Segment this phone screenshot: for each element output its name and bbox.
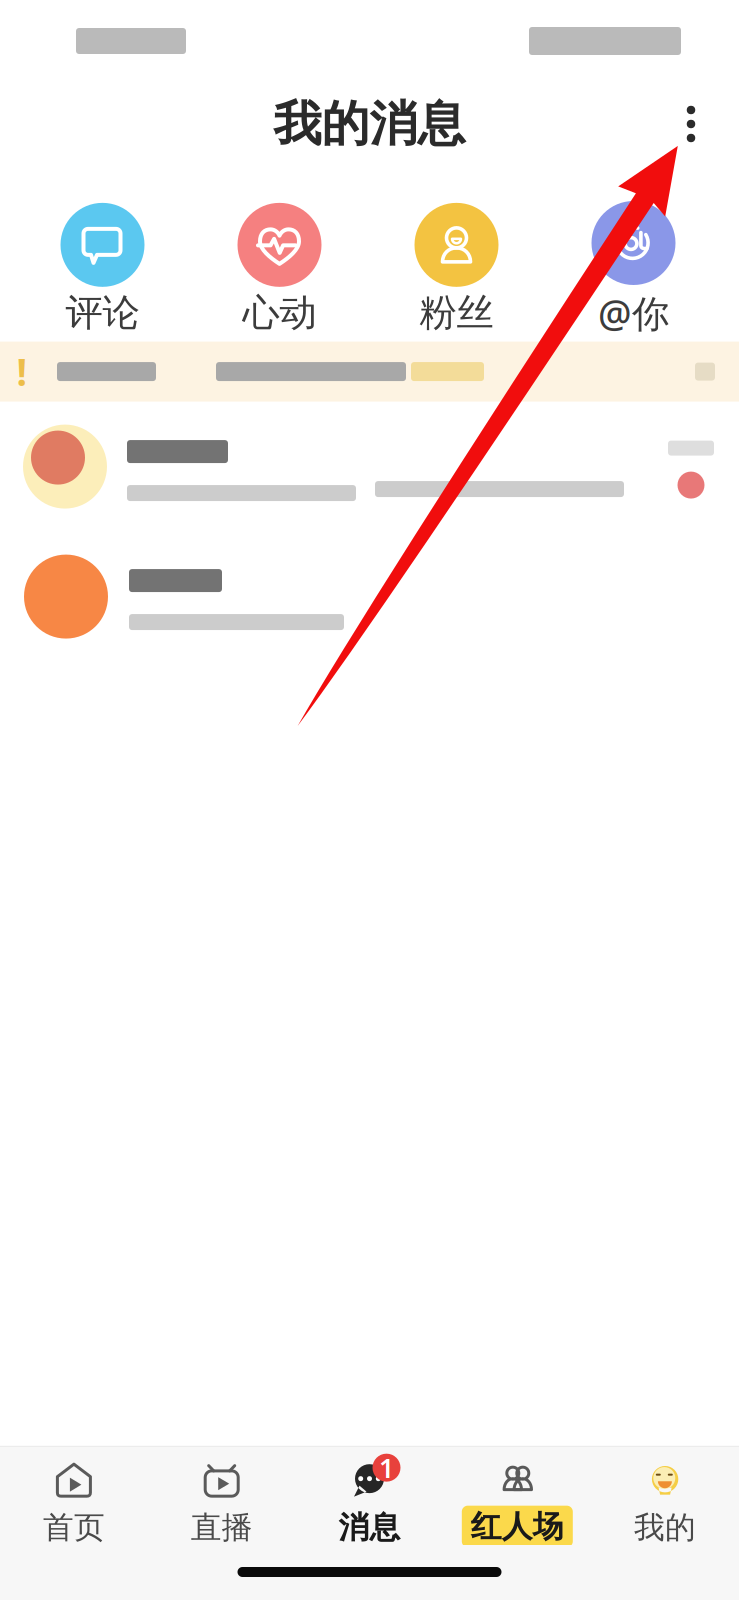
button[interactable]: 我的 bbox=[591, 1463, 739, 1546]
button[interactable]: 心动 bbox=[191, 203, 368, 336]
button[interactable]: 直播 bbox=[148, 1463, 296, 1546]
button[interactable]: 首页 bbox=[0, 1463, 148, 1546]
button[interactable]: 评论 bbox=[14, 203, 191, 336]
button[interactable]: More options bbox=[661, 91, 721, 157]
staticText: 红人场 bbox=[471, 1508, 564, 1545]
staticText: ! bbox=[16, 347, 27, 396]
button[interactable]: @你 bbox=[545, 201, 722, 338]
staticText: 首页 bbox=[43, 1509, 105, 1546]
staticText: 心动 bbox=[242, 290, 316, 336]
staticText: 我的 bbox=[634, 1509, 696, 1546]
staticText: 粉丝 bbox=[419, 290, 493, 336]
staticText: @你 bbox=[598, 288, 669, 338]
button[interactable]: 粉丝 bbox=[368, 203, 545, 336]
button[interactable]: 红人场 bbox=[443, 1462, 591, 1547]
button[interactable]: 1 bbox=[296, 1463, 443, 1546]
button[interactable] bbox=[0, 402, 739, 532]
staticText: 评论 bbox=[65, 290, 139, 336]
button[interactable] bbox=[0, 532, 739, 662]
staticText: 1 bbox=[379, 1450, 394, 1485]
staticText: 消息 bbox=[338, 1509, 400, 1546]
staticText: 我的消息 bbox=[273, 94, 465, 153]
button[interactable]: ! bbox=[0, 342, 739, 402]
staticText: 直播 bbox=[191, 1509, 253, 1546]
